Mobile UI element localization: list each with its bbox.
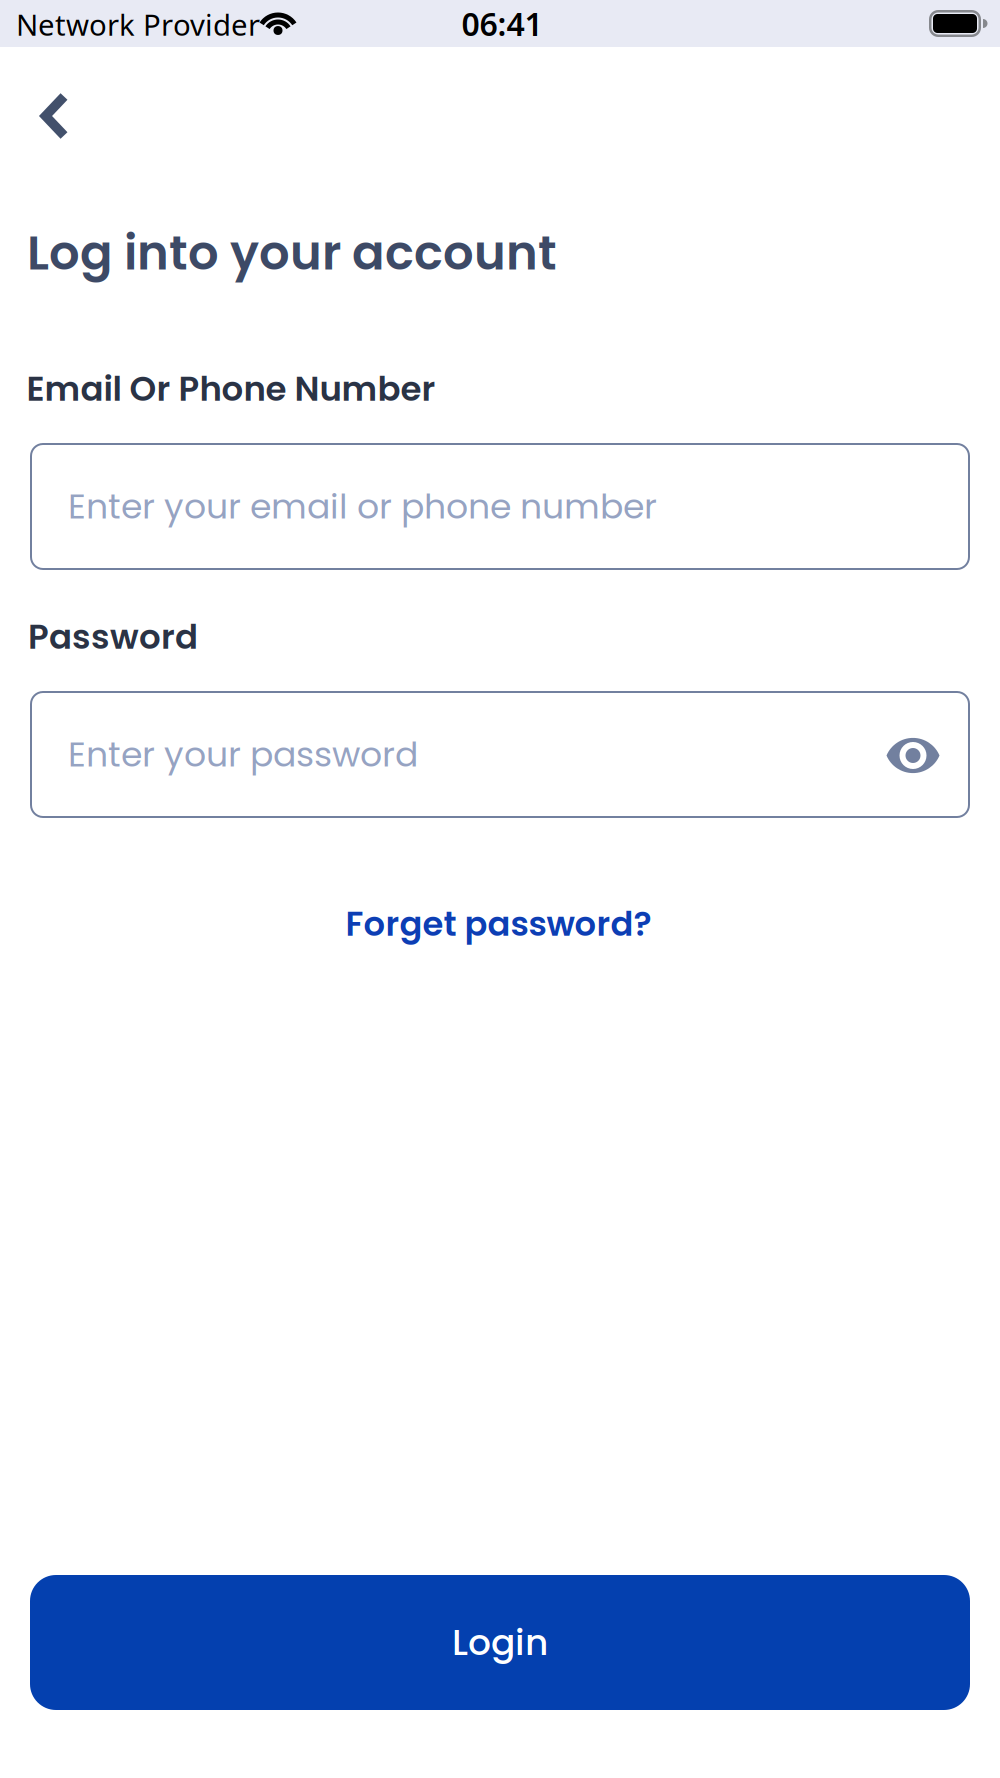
- button[interactable]: Back: [38, 93, 70, 139]
- button[interactable]: Login: [30, 1575, 970, 1710]
- button[interactable]: Forget password?: [345, 900, 651, 948]
- staticText: Email Or Phone Number: [26, 365, 435, 413]
- staticText: Enter your email or phone number: [68, 482, 657, 530]
- staticText: Login: [452, 1617, 548, 1668]
- staticText: Enter your password: [68, 730, 418, 778]
- button[interactable]: Email or phone number: [30, 443, 970, 570]
- staticText: Log into your account: [27, 219, 557, 286]
- staticText: Network Provider: [16, 5, 260, 44]
- button[interactable]: Show password: [886, 737, 941, 774]
- staticText: Password: [28, 613, 198, 661]
- button[interactable]: Password: [30, 691, 970, 818]
- staticText: Forget password?: [345, 900, 651, 948]
- staticText: 06:41: [461, 2, 542, 45]
